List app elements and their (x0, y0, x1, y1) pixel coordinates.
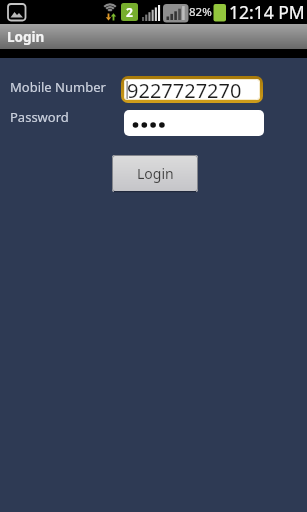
staticText: 2 (126, 4, 133, 20)
staticText: Password (10, 108, 69, 123)
button[interactable]: Login (112, 155, 198, 192)
button[interactable]: 9227727270 (121, 76, 263, 103)
staticText: 9227727270 (127, 77, 242, 98)
staticText: Login (137, 164, 174, 183)
button[interactable] (124, 110, 264, 136)
staticText: 12:14 PM (229, 0, 305, 23)
staticText: Mobile Number (10, 78, 106, 93)
staticText: 82% (189, 4, 212, 20)
staticText: Login (7, 28, 45, 46)
